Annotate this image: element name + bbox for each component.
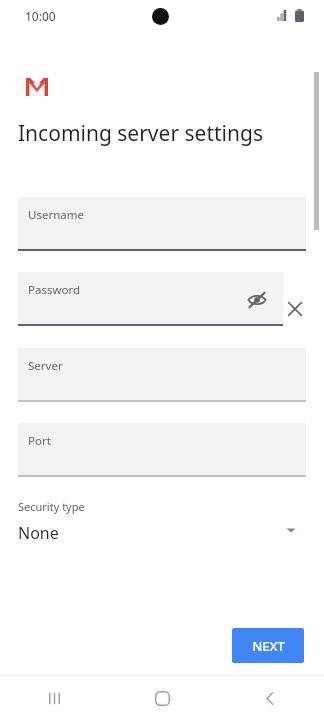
button[interactable]: Password	[18, 272, 283, 326]
button[interactable]: Security type	[18, 494, 306, 554]
staticText: None	[18, 522, 59, 544]
staticText: Incoming server settings	[18, 119, 263, 148]
staticText: Password	[28, 282, 81, 298]
button[interactable]: Server	[18, 348, 306, 402]
staticText: NEXT	[252, 637, 285, 655]
button[interactable]: Port	[18, 423, 306, 477]
button[interactable]: NEXT	[232, 628, 304, 663]
button[interactable]: Home	[108, 676, 216, 720]
button[interactable]: Back	[216, 676, 324, 720]
button[interactable]: Clear password	[281, 295, 309, 323]
staticText: Security type	[18, 499, 85, 514]
staticText: 10:00	[25, 8, 56, 24]
button[interactable]: Recents	[0, 676, 108, 720]
button[interactable]: Username	[18, 197, 306, 251]
staticText: Server	[28, 358, 63, 374]
staticText: Port	[28, 433, 51, 449]
staticText: Username	[28, 207, 84, 223]
button[interactable]: Hide password	[243, 286, 271, 314]
